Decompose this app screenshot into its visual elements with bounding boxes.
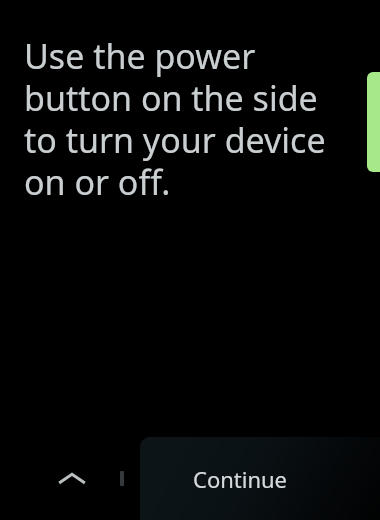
staticText: Continue xyxy=(193,464,288,494)
other: Power button location xyxy=(367,72,380,172)
button[interactable]: Scroll up xyxy=(48,455,96,503)
button[interactable]: Continue xyxy=(140,437,340,520)
staticText: Use the power button on the side to turn… xyxy=(24,33,344,205)
